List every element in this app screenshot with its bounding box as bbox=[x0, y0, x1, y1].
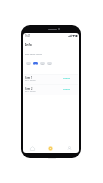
staticText: 21 bbox=[27, 63, 30, 65]
staticText: Rp 1.500rb bbox=[25, 90, 36, 93]
staticText: 9:41 bbox=[25, 34, 31, 38]
staticText: Rp 1.500rb bbox=[25, 79, 36, 82]
button[interactable]: 23 bbox=[40, 62, 45, 65]
staticText: Pilih Tahun Ajaran bbox=[25, 53, 42, 56]
staticText: 23 bbox=[41, 63, 44, 65]
staticText: Lunas bbox=[63, 76, 70, 79]
staticText: Lunas bbox=[63, 87, 70, 90]
button[interactable]: 22 bbox=[33, 62, 38, 65]
staticText: 24 bbox=[48, 63, 51, 65]
button[interactable]: 21 bbox=[26, 62, 31, 65]
button[interactable]: Profile bbox=[60, 143, 79, 153]
button[interactable]: Sem 1 bbox=[24, 74, 78, 84]
button[interactable]: Home bbox=[23, 143, 41, 153]
staticText: 22 bbox=[34, 63, 37, 65]
button[interactable]: Sem 2 bbox=[24, 85, 78, 95]
button[interactable]: 24 bbox=[47, 62, 52, 65]
button[interactable]: Scan bbox=[41, 143, 60, 153]
staticText: Sem 1 bbox=[25, 76, 33, 79]
staticText: Info bbox=[25, 42, 32, 47]
staticText: Sem 2 bbox=[25, 87, 33, 90]
